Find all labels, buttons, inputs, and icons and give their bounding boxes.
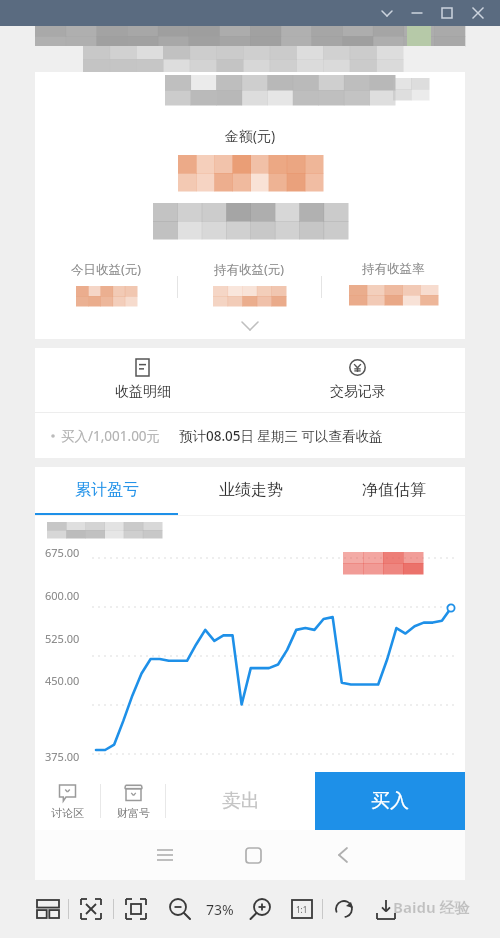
staticText: 73% xyxy=(206,900,234,919)
staticText: Baidu 经验 xyxy=(393,897,470,917)
staticText: 买入/1,001.00元 xyxy=(61,427,161,445)
staticText: 1:1 xyxy=(296,904,308,915)
staticText: 675.00 xyxy=(45,545,80,560)
staticText: 财富号 xyxy=(117,806,150,820)
button[interactable]: 财富号 xyxy=(101,772,165,830)
button[interactable]: Home xyxy=(233,835,273,875)
button[interactable]: 持有收益率 xyxy=(322,261,465,313)
staticText: 600.00 xyxy=(45,588,80,603)
button[interactable]: 持有收益(元) xyxy=(178,261,321,313)
staticText: 讨论区 xyxy=(51,806,84,820)
button[interactable]: Maximize xyxy=(432,0,462,26)
button[interactable]: 交易记录 xyxy=(250,348,465,412)
button[interactable]: Expand details xyxy=(35,313,465,339)
button[interactable]: Rotate xyxy=(323,888,365,930)
staticText: 交易记录 xyxy=(330,383,386,401)
button[interactable]: Fit screen xyxy=(114,887,158,931)
button[interactable]: Close xyxy=(462,0,494,26)
button[interactable]: 讨论区 xyxy=(35,772,100,830)
button[interactable]: Minimize xyxy=(402,0,432,26)
button[interactable]: Screenshot xyxy=(69,887,113,931)
button[interactable]: 卖出 xyxy=(166,772,315,830)
staticText: 今日收益(元) xyxy=(71,261,142,278)
button[interactable]: 买入/1,001.00元 xyxy=(35,413,465,458)
button[interactable]: Recent apps xyxy=(145,835,185,875)
button[interactable]: Actual size xyxy=(282,889,322,929)
button[interactable]: Collapse xyxy=(372,0,402,26)
staticText: 持有收益(元) xyxy=(214,261,285,278)
staticText: 525.00 xyxy=(45,631,80,646)
staticText: 金额(元) xyxy=(35,126,465,145)
staticText: 业绩走势 xyxy=(219,480,283,500)
staticText: 卖出 xyxy=(222,789,260,813)
staticText: 持有收益率 xyxy=(362,261,425,277)
button[interactable]: Back xyxy=(323,835,363,875)
staticText: 预计08.05日 星期三 可以查看收益 xyxy=(179,427,383,445)
staticText: 375.00 xyxy=(45,749,80,764)
button[interactable]: 买入 xyxy=(315,772,465,830)
button[interactable]: Zoom in xyxy=(238,887,282,931)
button[interactable]: 净值估算 xyxy=(322,467,465,513)
button[interactable]: 业绩走势 xyxy=(179,467,322,513)
staticText: 收益明细 xyxy=(115,383,171,401)
staticText: 净值估算 xyxy=(362,480,426,500)
button[interactable]: 累计盈亏 xyxy=(35,467,179,513)
button[interactable]: 今日收益(元) xyxy=(35,261,177,313)
staticText: 买入 xyxy=(371,789,409,813)
button[interactable]: Zoom out xyxy=(158,887,202,931)
staticText: 450.00 xyxy=(45,673,80,688)
button[interactable]: 收益明细 xyxy=(35,348,250,412)
button[interactable]: Layout xyxy=(28,889,68,929)
staticText: 累计盈亏 xyxy=(75,480,139,500)
button[interactable]: Download xyxy=(365,888,407,930)
